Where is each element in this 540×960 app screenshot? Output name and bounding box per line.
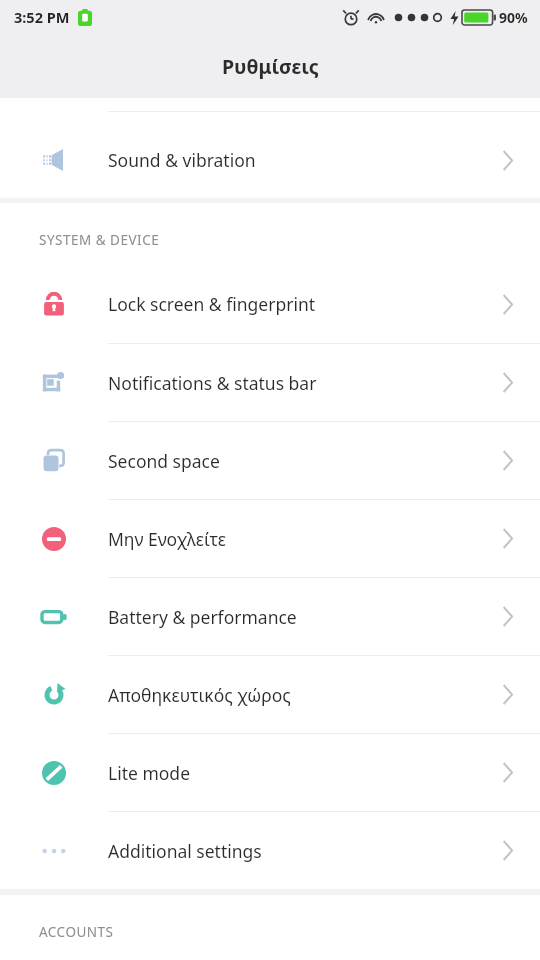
staticText: ACCOUNTS: [39, 923, 114, 941]
staticText: 3:52 PM: [14, 7, 70, 27]
staticText: Additional settings: [108, 839, 262, 863]
staticText: Lock screen & fingerprint: [108, 292, 316, 316]
staticText: Μην Ενοχλείτε: [108, 527, 226, 551]
button[interactable]: Αποθηκευτικός χώρος: [0, 655, 540, 733]
staticText: Lite mode: [108, 761, 191, 785]
button[interactable]: Second space: [0, 421, 540, 499]
staticText: Ρυθμίσεις: [222, 53, 319, 80]
staticText: SYSTEM & DEVICE: [39, 231, 160, 249]
staticText: Second space: [108, 449, 220, 473]
button[interactable]: Μην Ενοχλείτε: [0, 499, 540, 577]
staticText: Notifications & status bar: [108, 371, 317, 395]
staticText: Sound & vibration: [108, 148, 256, 172]
button[interactable]: Lock screen & fingerprint: [0, 265, 540, 343]
button[interactable]: Additional settings: [0, 811, 540, 889]
button[interactable]: Lite mode: [0, 733, 540, 811]
button[interactable]: Sound & vibration: [0, 122, 540, 198]
button[interactable]: Battery & performance: [0, 577, 540, 655]
button[interactable]: Notifications & status bar: [0, 343, 540, 421]
staticText: Αποθηκευτικός χώρος: [108, 683, 291, 707]
staticText: Battery & performance: [108, 605, 297, 629]
staticText: 90%: [499, 8, 528, 27]
